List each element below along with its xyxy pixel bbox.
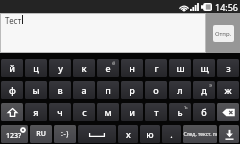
staticText: п [105, 84, 111, 96]
staticText: ш [176, 62, 185, 74]
button[interactable]: RU [30, 125, 52, 143]
button[interactable]: г [145, 59, 167, 77]
staticText: Отпр. [215, 30, 232, 38]
staticText: ч [57, 106, 63, 118]
button[interactable]: ш [169, 59, 191, 77]
staticText: с [82, 106, 87, 118]
staticText: з [226, 62, 231, 74]
staticText: я [33, 106, 39, 118]
button[interactable]: Space [78, 125, 116, 143]
staticText: й [9, 62, 15, 74]
staticText: у [58, 62, 63, 74]
button[interactable]: ц [25, 59, 47, 77]
button[interactable]: и [121, 103, 143, 121]
button[interactable]: с [73, 103, 95, 121]
staticText: 123? [6, 131, 22, 141]
button[interactable]: н [121, 59, 143, 77]
staticText: в [57, 84, 63, 96]
button[interactable]: :-) [54, 125, 76, 143]
other: Backspace [222, 108, 235, 117]
staticText: :-) [61, 129, 70, 139]
other: Space [89, 132, 105, 137]
button[interactable]: л [169, 81, 191, 99]
button[interactable]: е [97, 59, 119, 77]
staticText: л [177, 84, 183, 96]
staticText: б [201, 106, 207, 118]
button[interactable]: Backspace [217, 103, 239, 121]
button[interactable]: Next text field [219, 125, 239, 143]
button[interactable]: ь [169, 103, 191, 121]
staticText: ф [9, 84, 16, 96]
staticText: е [105, 62, 111, 74]
staticText: д [201, 84, 207, 96]
staticText: т [154, 106, 159, 118]
button[interactable]: у [49, 59, 71, 77]
staticText: э [209, 81, 212, 89]
button[interactable]: Тест [0, 13, 206, 53]
button[interactable]: ч [49, 103, 71, 121]
button[interactable]: х [118, 125, 138, 143]
staticText: о [153, 84, 159, 96]
staticText: р [129, 84, 135, 96]
other: Next text field [225, 129, 234, 140]
button[interactable]: Отпр. [213, 25, 234, 42]
button[interactable]: к [73, 59, 95, 77]
button[interactable]: ы [25, 81, 47, 99]
button[interactable]: . [162, 125, 181, 143]
button[interactable]: ю [140, 125, 160, 143]
staticText: щ [200, 62, 209, 74]
staticText: ц [33, 62, 39, 74]
staticText: Тест [5, 15, 22, 26]
button[interactable]: о [145, 81, 167, 99]
button[interactable]: ф [1, 81, 23, 99]
button[interactable]: ж [217, 81, 239, 99]
staticText: ё [112, 59, 116, 67]
staticText: 14:56 [215, 1, 239, 13]
staticText: м [104, 106, 112, 118]
staticText: х [126, 128, 131, 140]
button[interactable]: а [73, 81, 95, 99]
button[interactable]: б [193, 103, 215, 121]
staticText: ы [32, 84, 40, 96]
staticText: ь [177, 106, 183, 118]
staticText: ъ [184, 103, 188, 111]
button[interactable]: р [121, 81, 143, 99]
staticText: ю [146, 128, 154, 140]
other: Shift [7, 107, 18, 118]
staticText: . [170, 128, 173, 140]
staticText: а [81, 84, 87, 96]
button[interactable]: м [97, 103, 119, 121]
button[interactable]: з [217, 59, 239, 77]
staticText: ж [224, 84, 232, 96]
button[interactable]: 123? [1, 125, 28, 143]
button[interactable]: д [193, 81, 215, 99]
button[interactable]: в [49, 81, 71, 99]
button[interactable]: т [145, 103, 167, 121]
button[interactable]: След. текст. поле [183, 125, 217, 143]
staticText: н [129, 62, 135, 74]
staticText: г [154, 62, 159, 74]
staticText: След. текст. поле [183, 131, 217, 138]
button[interactable]: щ [193, 59, 215, 77]
button[interactable]: я [25, 103, 47, 121]
staticText: RU [36, 129, 46, 139]
button[interactable]: Shift [1, 103, 23, 121]
button[interactable]: й [1, 59, 23, 77]
staticText: к [81, 62, 87, 74]
staticText: и [129, 106, 135, 118]
button[interactable]: п [97, 81, 119, 99]
